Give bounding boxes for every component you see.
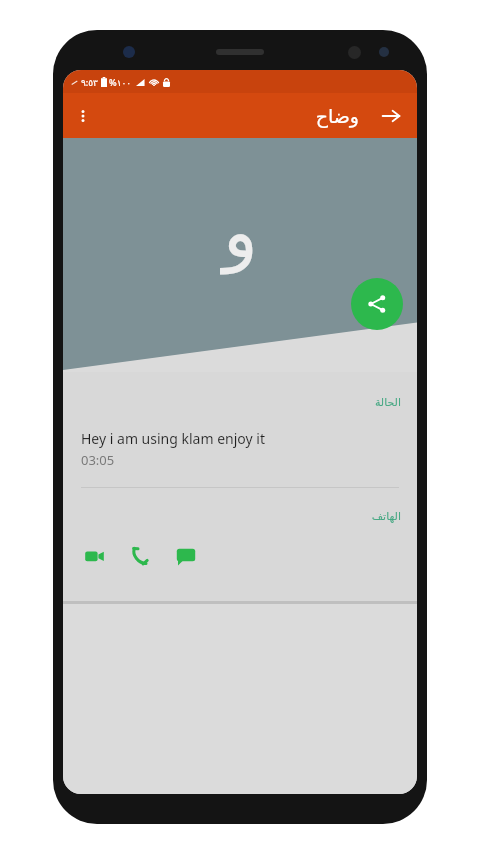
button[interactable]: Video call [77, 539, 111, 573]
staticText: و [223, 190, 258, 274]
staticText: 03:05 [81, 451, 115, 469]
button[interactable]: Share [351, 278, 403, 330]
staticText: ٩:٥٣ [81, 76, 98, 88]
staticText: الهاتف [63, 510, 401, 523]
staticText: %١٠٠ [109, 76, 132, 88]
button[interactable]: Message [169, 539, 203, 573]
staticText: الحالة [63, 396, 401, 409]
staticText: وضاح [315, 105, 359, 127]
button[interactable]: More options [63, 96, 103, 136]
staticText: Hey i am using klam enjoy it [81, 429, 265, 448]
button[interactable]: Back [371, 96, 411, 136]
button[interactable]: Call [123, 539, 157, 573]
button[interactable]: الحالة [63, 372, 417, 487]
